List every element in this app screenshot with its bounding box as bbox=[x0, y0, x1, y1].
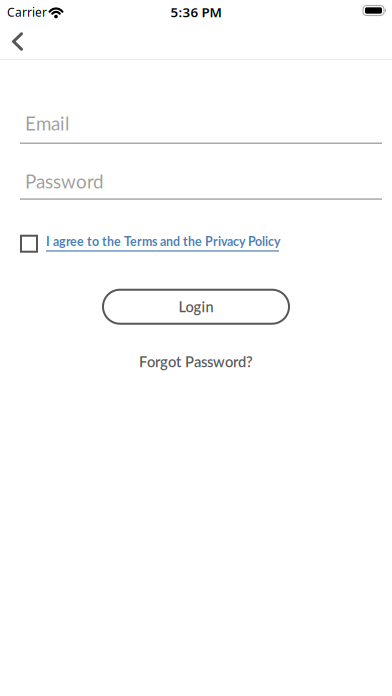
staticText: I agree to the Terms and the Privacy Pol… bbox=[46, 234, 281, 249]
staticText: Password bbox=[25, 170, 104, 192]
staticText: Forgot Password? bbox=[139, 353, 253, 370]
staticText: Email bbox=[25, 112, 69, 135]
staticText: 5:36 PM bbox=[170, 3, 221, 21]
button[interactable]: I agree to the Terms and the Privacy Pol… bbox=[20, 235, 38, 253]
staticText: Login bbox=[178, 298, 213, 315]
button[interactable]: Login bbox=[102, 289, 290, 325]
button[interactable]: Back bbox=[0, 24, 39, 59]
button[interactable]: I agree to the Terms and the Privacy Pol… bbox=[46, 235, 281, 253]
button[interactable]: Forgot Password? bbox=[139, 353, 253, 370]
staticText: Carrier bbox=[7, 4, 47, 20]
